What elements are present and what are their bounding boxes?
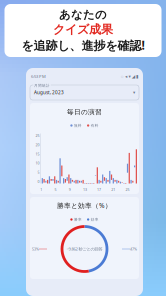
staticText: ◢ <box>132 74 135 79</box>
staticText: August, 2023 <box>34 89 64 96</box>
staticText: 13 <box>83 187 87 192</box>
staticText: ◂ <box>125 74 127 79</box>
staticText: 0 <box>37 179 39 184</box>
staticText: クイズ成果 <box>53 22 113 37</box>
staticText: 21 <box>111 187 115 192</box>
staticText: を追跡し、進捗を確認! <box>21 37 144 53</box>
staticText: ▾ <box>128 74 130 79</box>
staticText: 20 <box>35 142 39 147</box>
staticText: 毎日の演習 <box>67 108 102 116</box>
staticText: 効率 <box>91 217 99 222</box>
staticText: 1 <box>40 187 42 192</box>
staticText: ▾ <box>133 90 135 95</box>
staticText: 47% <box>130 246 137 251</box>
staticText: 有料 <box>91 123 99 128</box>
staticText: 15 <box>35 151 39 156</box>
staticText: 勝率 <box>74 217 82 222</box>
staticText: 6:53 PM <box>31 74 46 79</box>
staticText: ◌ <box>121 73 124 80</box>
staticText: ▮ <box>136 74 138 79</box>
staticText: あなたの <box>59 8 107 22</box>
staticText: 無料 <box>74 123 82 128</box>
staticText: 5 <box>54 187 56 192</box>
staticText: 25 <box>35 133 39 138</box>
staticText: ~9.862 秒ごとの回答 <box>66 246 102 252</box>
staticText: 9 <box>69 187 71 192</box>
staticText: 17 <box>97 187 101 192</box>
staticText: 10 <box>35 161 39 166</box>
staticText: 25 <box>125 187 129 192</box>
staticText: 53% <box>32 246 39 251</box>
button[interactable]: August, 2023 <box>30 85 139 100</box>
staticText: 月間統計 <box>34 83 50 88</box>
staticText: 5 <box>37 170 39 175</box>
staticText: 勝率と効率（%） <box>57 201 112 210</box>
